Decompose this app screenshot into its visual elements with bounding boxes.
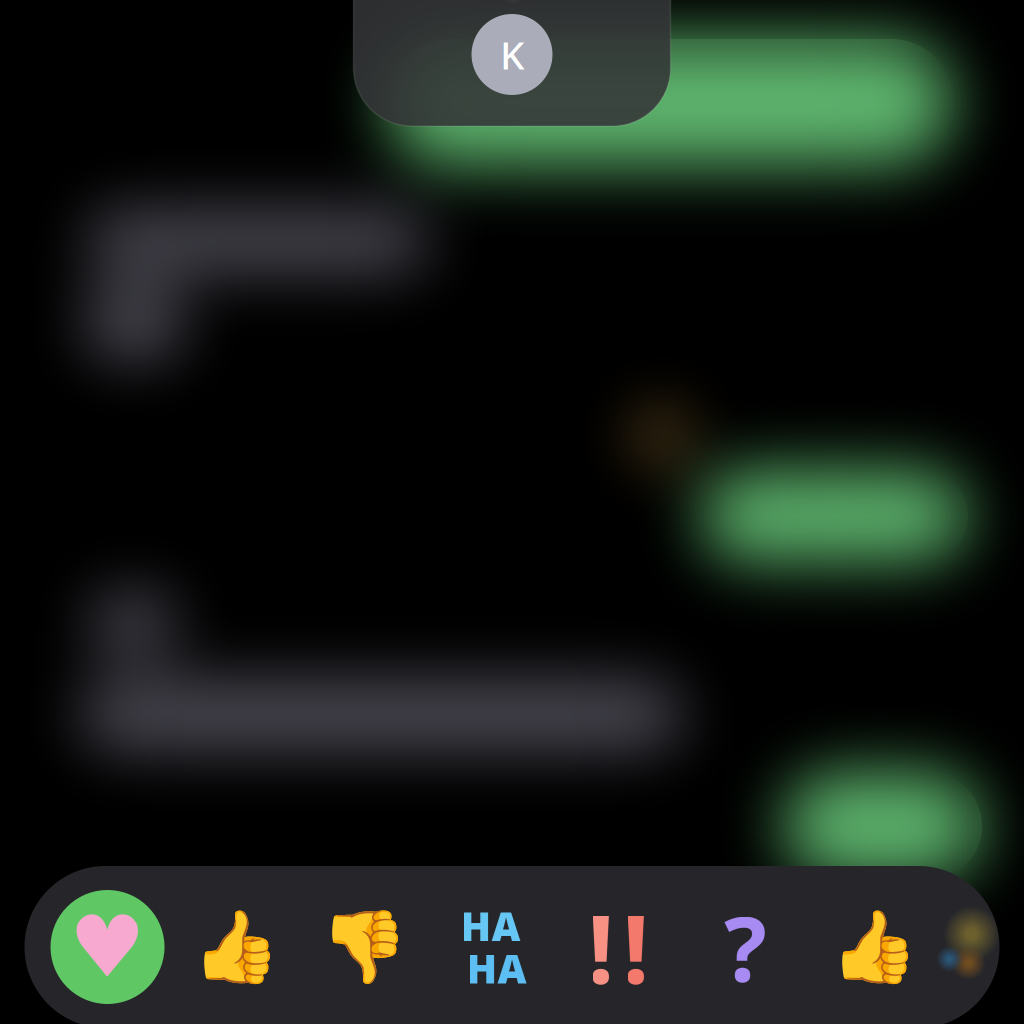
button[interactable]: Question mark xyxy=(684,866,806,1024)
staticText: K xyxy=(500,29,524,80)
button[interactable]: Thumbs down xyxy=(302,866,424,1024)
button[interactable]: Love xyxy=(46,866,168,1024)
button[interactable]: Exclamation xyxy=(557,866,679,1024)
staticText: ! xyxy=(587,884,614,1010)
staticText: 👍 xyxy=(191,907,279,987)
staticText: 👍 xyxy=(829,907,917,987)
button[interactable]: Thumbs up xyxy=(812,866,934,1024)
staticText: ! xyxy=(622,884,649,1010)
button[interactable]: More reactions xyxy=(909,866,1024,1024)
button[interactable]: Haha xyxy=(429,866,551,1024)
staticText: HA xyxy=(460,899,520,952)
staticText: ♥ xyxy=(69,899,146,995)
button[interactable]: Thumbs up xyxy=(174,866,296,1024)
staticText: ? xyxy=(724,888,767,1006)
staticText: HA xyxy=(466,941,526,995)
staticText: 👎 xyxy=(319,907,407,987)
